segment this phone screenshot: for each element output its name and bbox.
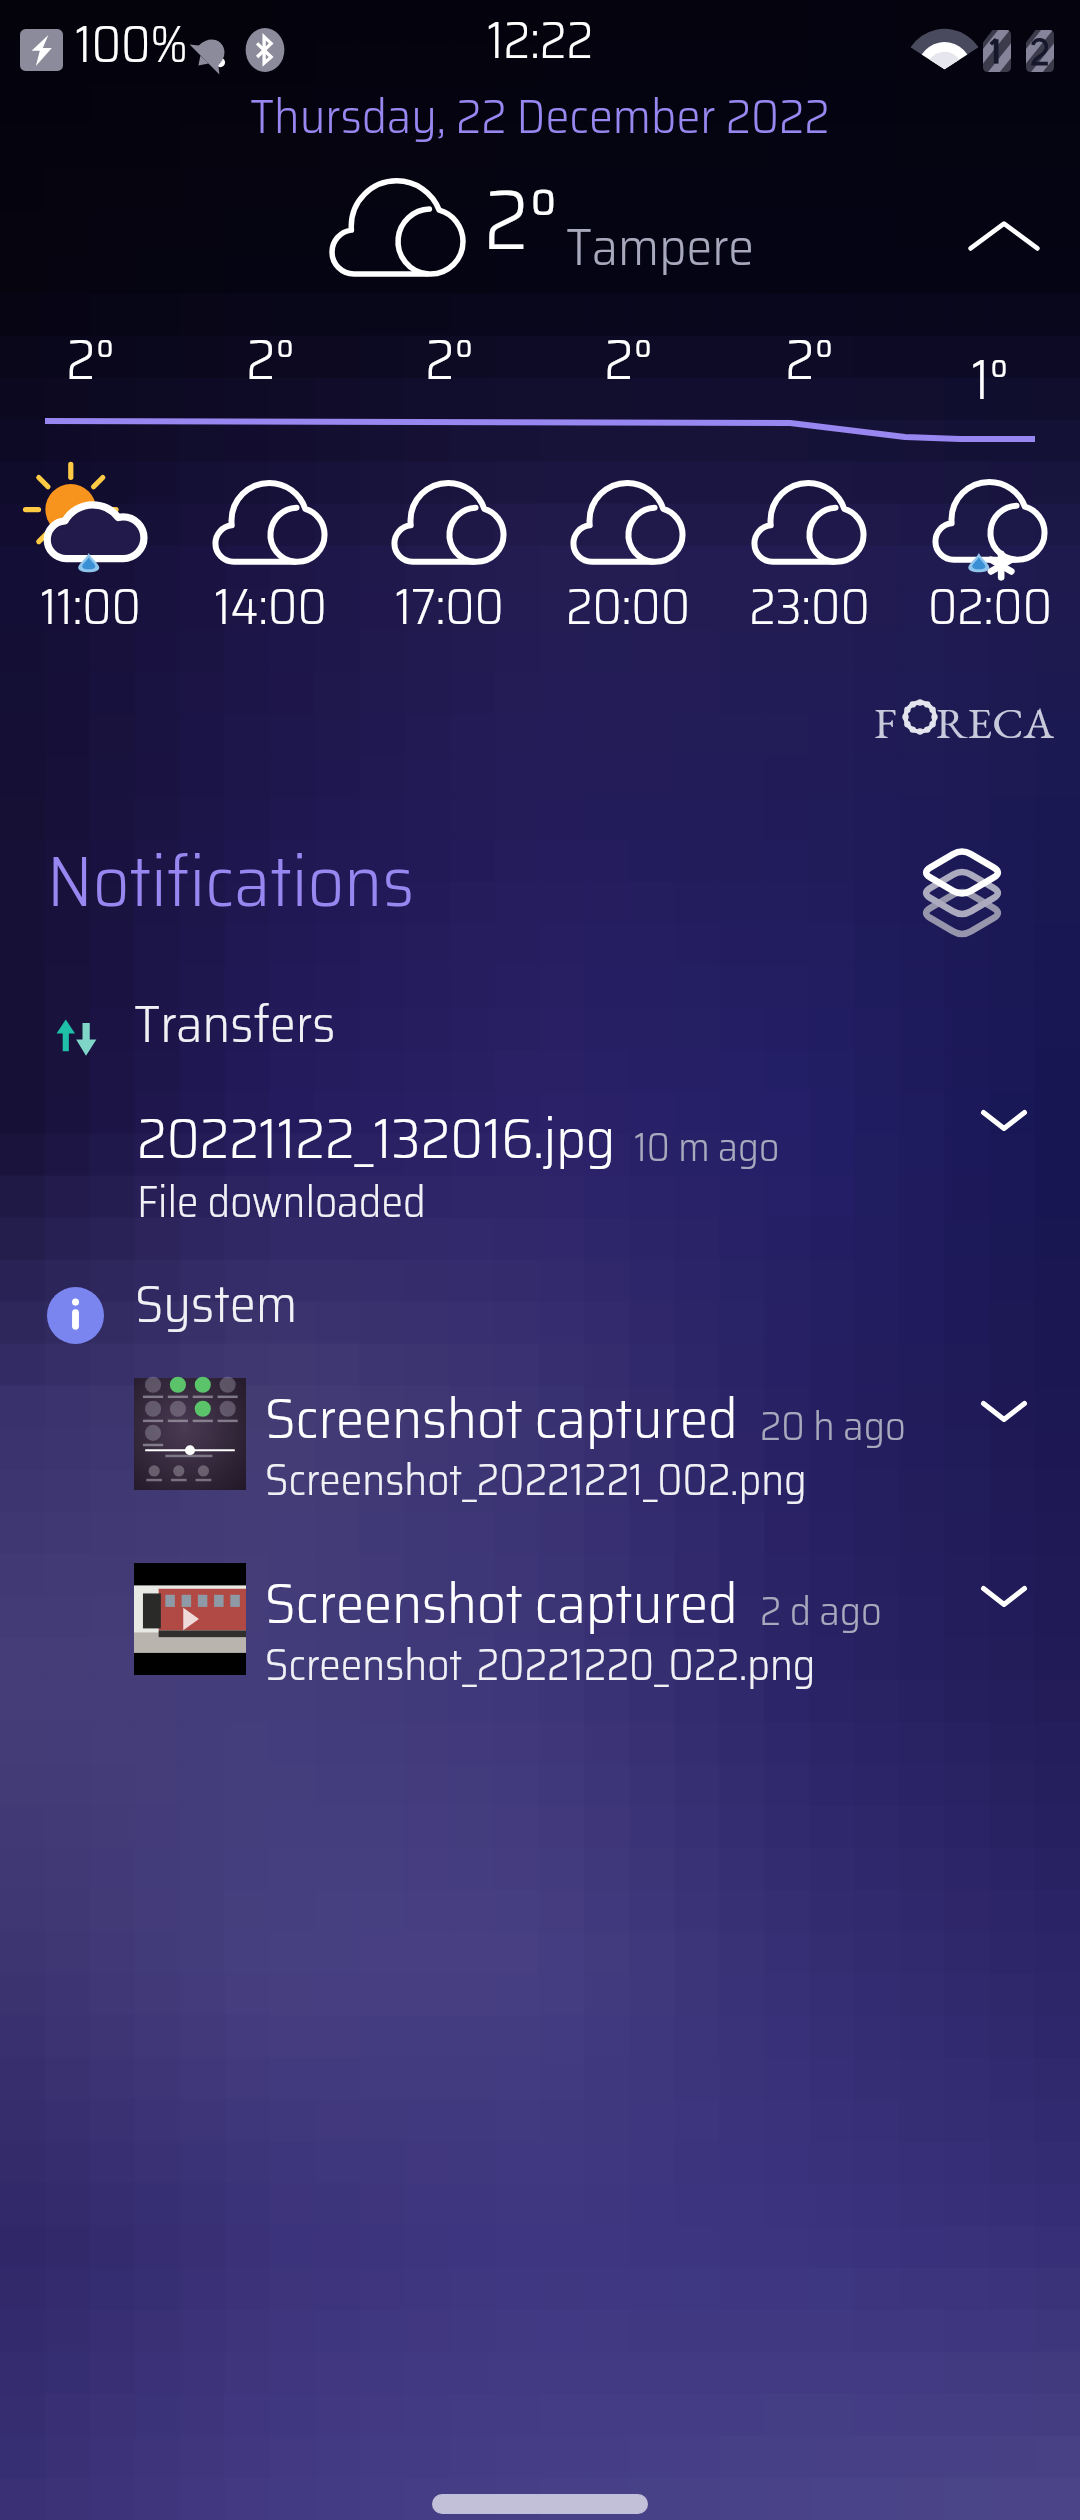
staticText: 2°: [484, 153, 559, 287]
button[interactable]: Collapse weather: [966, 205, 1042, 267]
staticText: RECA: [936, 694, 1054, 744]
staticText: 20221122_132016.jpg: [137, 1094, 616, 1183]
staticText: 14:00: [214, 567, 327, 646]
staticText: Tampere: [566, 206, 755, 288]
staticText: Notifications: [47, 824, 415, 937]
staticText: Screenshot_20221221_002.png: [265, 1446, 807, 1514]
staticText: Screenshot_20221220_022.png: [265, 1631, 816, 1699]
button[interactable]: Transfers: [134, 977, 336, 1069]
button[interactable]: Notifications: [47, 823, 415, 937]
staticText: 2°: [246, 316, 295, 404]
staticText: 11:00: [40, 567, 141, 646]
staticText: 2 d ago: [760, 1579, 882, 1643]
staticText: Transfers: [134, 982, 336, 1065]
staticText: 100%: [75, 4, 188, 84]
staticText: 17:00: [395, 567, 504, 646]
staticText: Screenshot captured: [265, 1374, 738, 1463]
staticText: 1°: [971, 336, 1009, 424]
staticText: 02:00: [928, 567, 1052, 646]
staticText: 20 h ago: [760, 1394, 906, 1458]
button[interactable]: System: [135, 1259, 298, 1347]
staticText: System: [135, 1262, 298, 1345]
button[interactable]: 20221122_132016.jpg: [110, 1086, 1060, 1216]
staticText: File downloaded: [137, 1168, 426, 1236]
staticText: F: [874, 694, 897, 744]
staticText: 2°: [604, 316, 653, 404]
button[interactable]: Screenshot captured: [110, 1563, 1060, 1698]
staticText: 23:00: [749, 567, 870, 646]
staticText: Thursday, 22 December 2022: [250, 78, 830, 154]
staticText: 20:00: [566, 567, 690, 646]
button[interactable]: Notification groups: [906, 844, 1018, 944]
staticText: Screenshot captured: [265, 1559, 738, 1648]
staticText: 2°: [66, 316, 115, 404]
button[interactable]: Screenshot captured: [110, 1378, 1060, 1513]
staticText: 10 m ago: [634, 1116, 780, 1179]
staticText: 12:22: [487, 0, 594, 80]
staticText: 2°: [785, 316, 834, 404]
staticText: 2°: [425, 316, 474, 404]
